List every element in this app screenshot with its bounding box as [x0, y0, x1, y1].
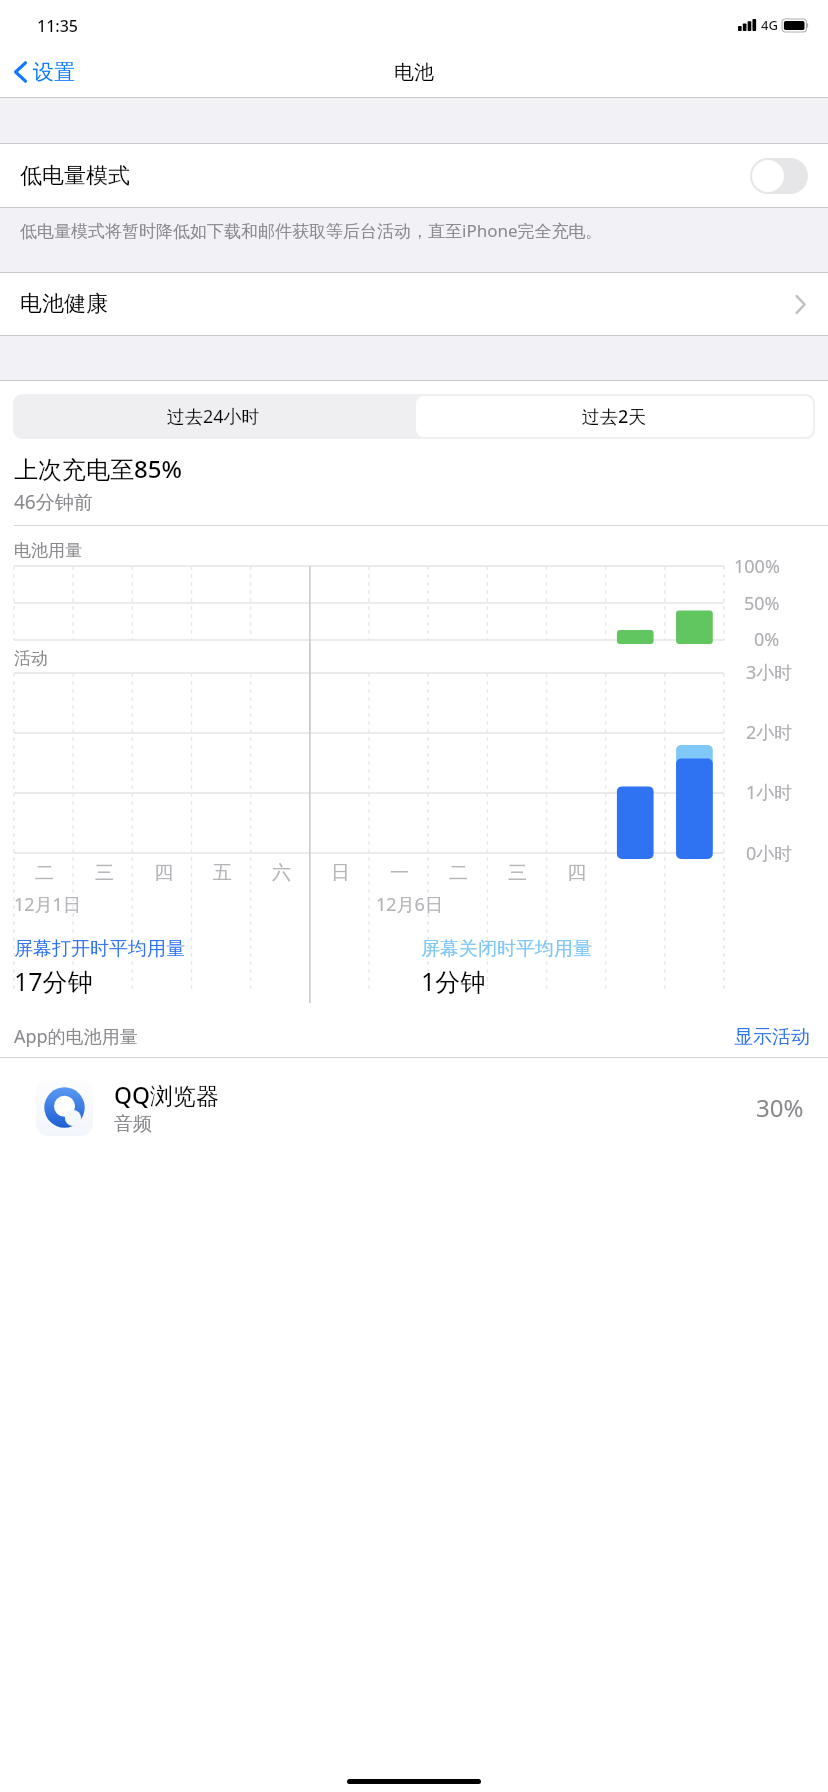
button[interactable]: 低电量模式 [0, 144, 828, 207]
button[interactable]: 屏幕打开时平均用量 [14, 937, 421, 998]
staticText: 过去24小时 [167, 404, 260, 429]
staticText: 四 [567, 861, 586, 885]
staticText: 12月6日 [376, 892, 443, 917]
staticText: 四 [154, 861, 173, 885]
staticText: 活动 [14, 648, 48, 669]
staticText: 12月1日 [14, 892, 81, 917]
button[interactable]: 低电量模式开关 [750, 158, 808, 194]
staticText: 1小时 [746, 780, 793, 805]
button[interactable]: 显示活动 [734, 1025, 810, 1049]
staticText: 2小时 [746, 720, 793, 745]
staticText: 50% [744, 591, 780, 616]
staticText: 1分钟 [421, 964, 486, 998]
staticText: QQ浏览器 [114, 1079, 220, 1110]
button[interactable]: 电池健康 [0, 273, 828, 335]
staticText: 0小时 [746, 841, 793, 866]
staticText: 六 [272, 861, 291, 885]
staticText: 设置 [33, 59, 75, 85]
staticText: 46分钟前 [14, 489, 93, 515]
staticText: 三 [508, 861, 527, 885]
button[interactable]: 屏幕关闭时平均用量 [421, 937, 828, 998]
staticText: 3小时 [746, 660, 793, 685]
staticText: 屏幕关闭时平均用量 [421, 937, 592, 961]
staticText: 二 [449, 861, 468, 885]
staticText: 五 [213, 861, 232, 885]
staticText: 上次充电至85% [14, 452, 182, 485]
staticText: 低电量模式将暂时降低如下载和邮件获取等后台活动，直至iPhone完全充电。 [20, 219, 603, 242]
staticText: 电池健康 [20, 290, 108, 318]
staticText: 低电量模式 [20, 162, 130, 190]
button[interactable]: 过去2天 [416, 396, 813, 437]
staticText: 显示活动 [734, 1025, 810, 1049]
staticText: 30% [756, 1091, 804, 1124]
staticText: 三 [95, 861, 114, 885]
staticText: 音频 [114, 1112, 152, 1136]
button[interactable]: QQ浏览器 [0, 1058, 828, 1156]
staticText: 17分钟 [14, 964, 93, 998]
staticText: 0% [754, 627, 780, 652]
button[interactable]: 过去24小时 [13, 394, 414, 439]
staticText: 日 [331, 861, 350, 885]
staticText: 二 [35, 861, 54, 885]
staticText: 一 [390, 861, 409, 885]
staticText: 电池用量 [14, 540, 82, 561]
staticText: 屏幕打开时平均用量 [14, 937, 185, 961]
staticText: 4G [761, 16, 778, 34]
staticText: 100% [734, 554, 780, 579]
staticText: App的电池用量 [14, 1024, 138, 1049]
staticText: 电池 [394, 60, 434, 85]
staticText: 过去2天 [582, 404, 647, 429]
staticText: 11:35 [37, 15, 78, 37]
button[interactable]: 设置 [0, 53, 85, 91]
